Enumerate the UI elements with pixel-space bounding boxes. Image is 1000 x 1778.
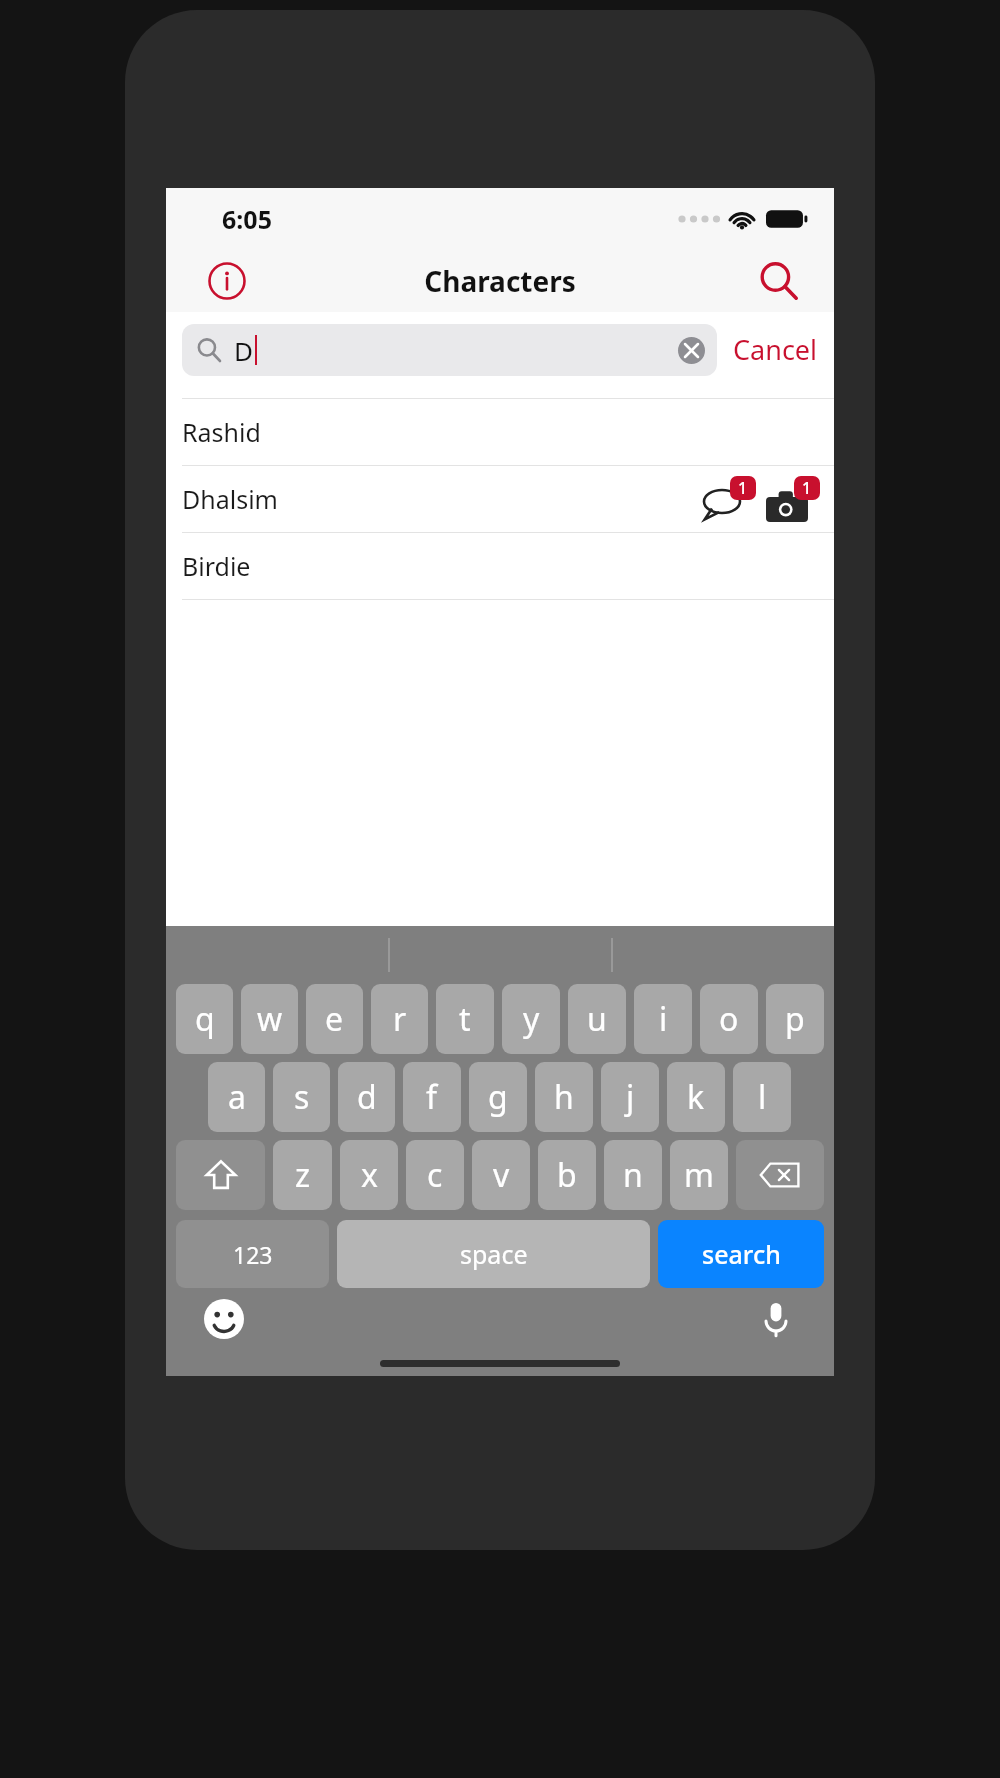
- button[interactable]: Shift: [176, 1140, 265, 1210]
- staticText: o: [719, 997, 739, 1041]
- button[interactable]: D: [182, 324, 717, 376]
- staticText: x: [361, 1153, 378, 1197]
- button[interactable]: Backspace: [736, 1140, 824, 1210]
- button[interactable]: Dictation: [750, 1293, 802, 1345]
- button[interactable]: Rashid: [166, 399, 834, 465]
- staticText: w: [257, 997, 283, 1041]
- button[interactable]: i: [634, 984, 692, 1054]
- button[interactable]: Dhalsim: [166, 466, 834, 532]
- staticText: c: [427, 1153, 443, 1197]
- button[interactable]: r: [371, 984, 428, 1054]
- staticText: r: [393, 997, 407, 1041]
- staticText: y: [523, 997, 540, 1041]
- staticText: m: [684, 1153, 714, 1197]
- staticText: i: [659, 997, 668, 1041]
- button[interactable]: a: [208, 1062, 265, 1132]
- staticText: Dhalsim: [182, 482, 278, 516]
- button[interactable]: e: [306, 984, 363, 1054]
- staticText: e: [325, 997, 344, 1041]
- button[interactable]: Cancel: [717, 323, 834, 376]
- staticText: b: [557, 1153, 577, 1197]
- staticText: s: [294, 1075, 310, 1119]
- button[interactable]: Search: [750, 252, 808, 310]
- button[interactable]: w: [241, 984, 298, 1054]
- staticText: u: [587, 997, 607, 1041]
- staticText: a: [228, 1075, 246, 1119]
- staticText: h: [554, 1075, 574, 1119]
- button[interactable]: p: [766, 984, 824, 1054]
- button[interactable]: u: [568, 984, 626, 1054]
- button[interactable]: d: [338, 1062, 395, 1132]
- button[interactable]: g: [469, 1062, 527, 1132]
- button[interactable]: 123: [176, 1220, 329, 1288]
- staticText: j: [626, 1075, 635, 1119]
- button[interactable]: k: [667, 1062, 725, 1132]
- button[interactable]: Clear text: [669, 328, 713, 372]
- button[interactable]: j: [601, 1062, 659, 1132]
- button[interactable]: space: [337, 1220, 650, 1288]
- staticText: D: [234, 333, 253, 368]
- staticText: d: [357, 1075, 377, 1119]
- button[interactable]: Info: [198, 252, 256, 310]
- button[interactable]: l: [733, 1062, 791, 1132]
- staticText: 6:05: [222, 202, 272, 236]
- button[interactable]: o: [700, 984, 758, 1054]
- staticText: t: [459, 997, 471, 1041]
- button[interactable]: x: [340, 1140, 398, 1210]
- staticText: Characters: [424, 262, 576, 300]
- button[interactable]: b: [538, 1140, 596, 1210]
- staticText: f: [426, 1075, 438, 1119]
- button[interactable]: h: [535, 1062, 593, 1132]
- staticText: n: [623, 1153, 643, 1197]
- staticText: 1: [802, 477, 812, 499]
- button[interactable]: Birdie: [166, 533, 834, 599]
- button[interactable]: search: [658, 1220, 824, 1288]
- button[interactable]: y: [502, 984, 560, 1054]
- button[interactable]: s: [273, 1062, 330, 1132]
- staticText: space: [460, 1237, 528, 1271]
- button[interactable]: Emoji: [198, 1293, 250, 1345]
- button[interactable]: q: [176, 984, 233, 1054]
- staticText: z: [295, 1153, 311, 1197]
- staticText: v: [493, 1153, 510, 1197]
- staticText: k: [687, 1075, 705, 1119]
- button[interactable]: c: [406, 1140, 464, 1210]
- staticText: 1: [738, 477, 748, 499]
- staticText: g: [488, 1075, 508, 1119]
- button[interactable]: z: [273, 1140, 332, 1210]
- staticText: q: [195, 997, 215, 1041]
- button[interactable]: t: [436, 984, 494, 1054]
- button[interactable]: n: [604, 1140, 662, 1210]
- button[interactable]: m: [670, 1140, 728, 1210]
- staticText: Rashid: [182, 415, 261, 449]
- staticText: 123: [233, 1239, 273, 1270]
- button[interactable]: f: [403, 1062, 461, 1132]
- staticText: Cancel: [733, 331, 818, 368]
- staticText: Birdie: [182, 549, 251, 583]
- staticText: l: [758, 1075, 767, 1119]
- staticText: p: [785, 997, 805, 1041]
- button[interactable]: v: [472, 1140, 530, 1210]
- staticText: search: [702, 1237, 781, 1271]
